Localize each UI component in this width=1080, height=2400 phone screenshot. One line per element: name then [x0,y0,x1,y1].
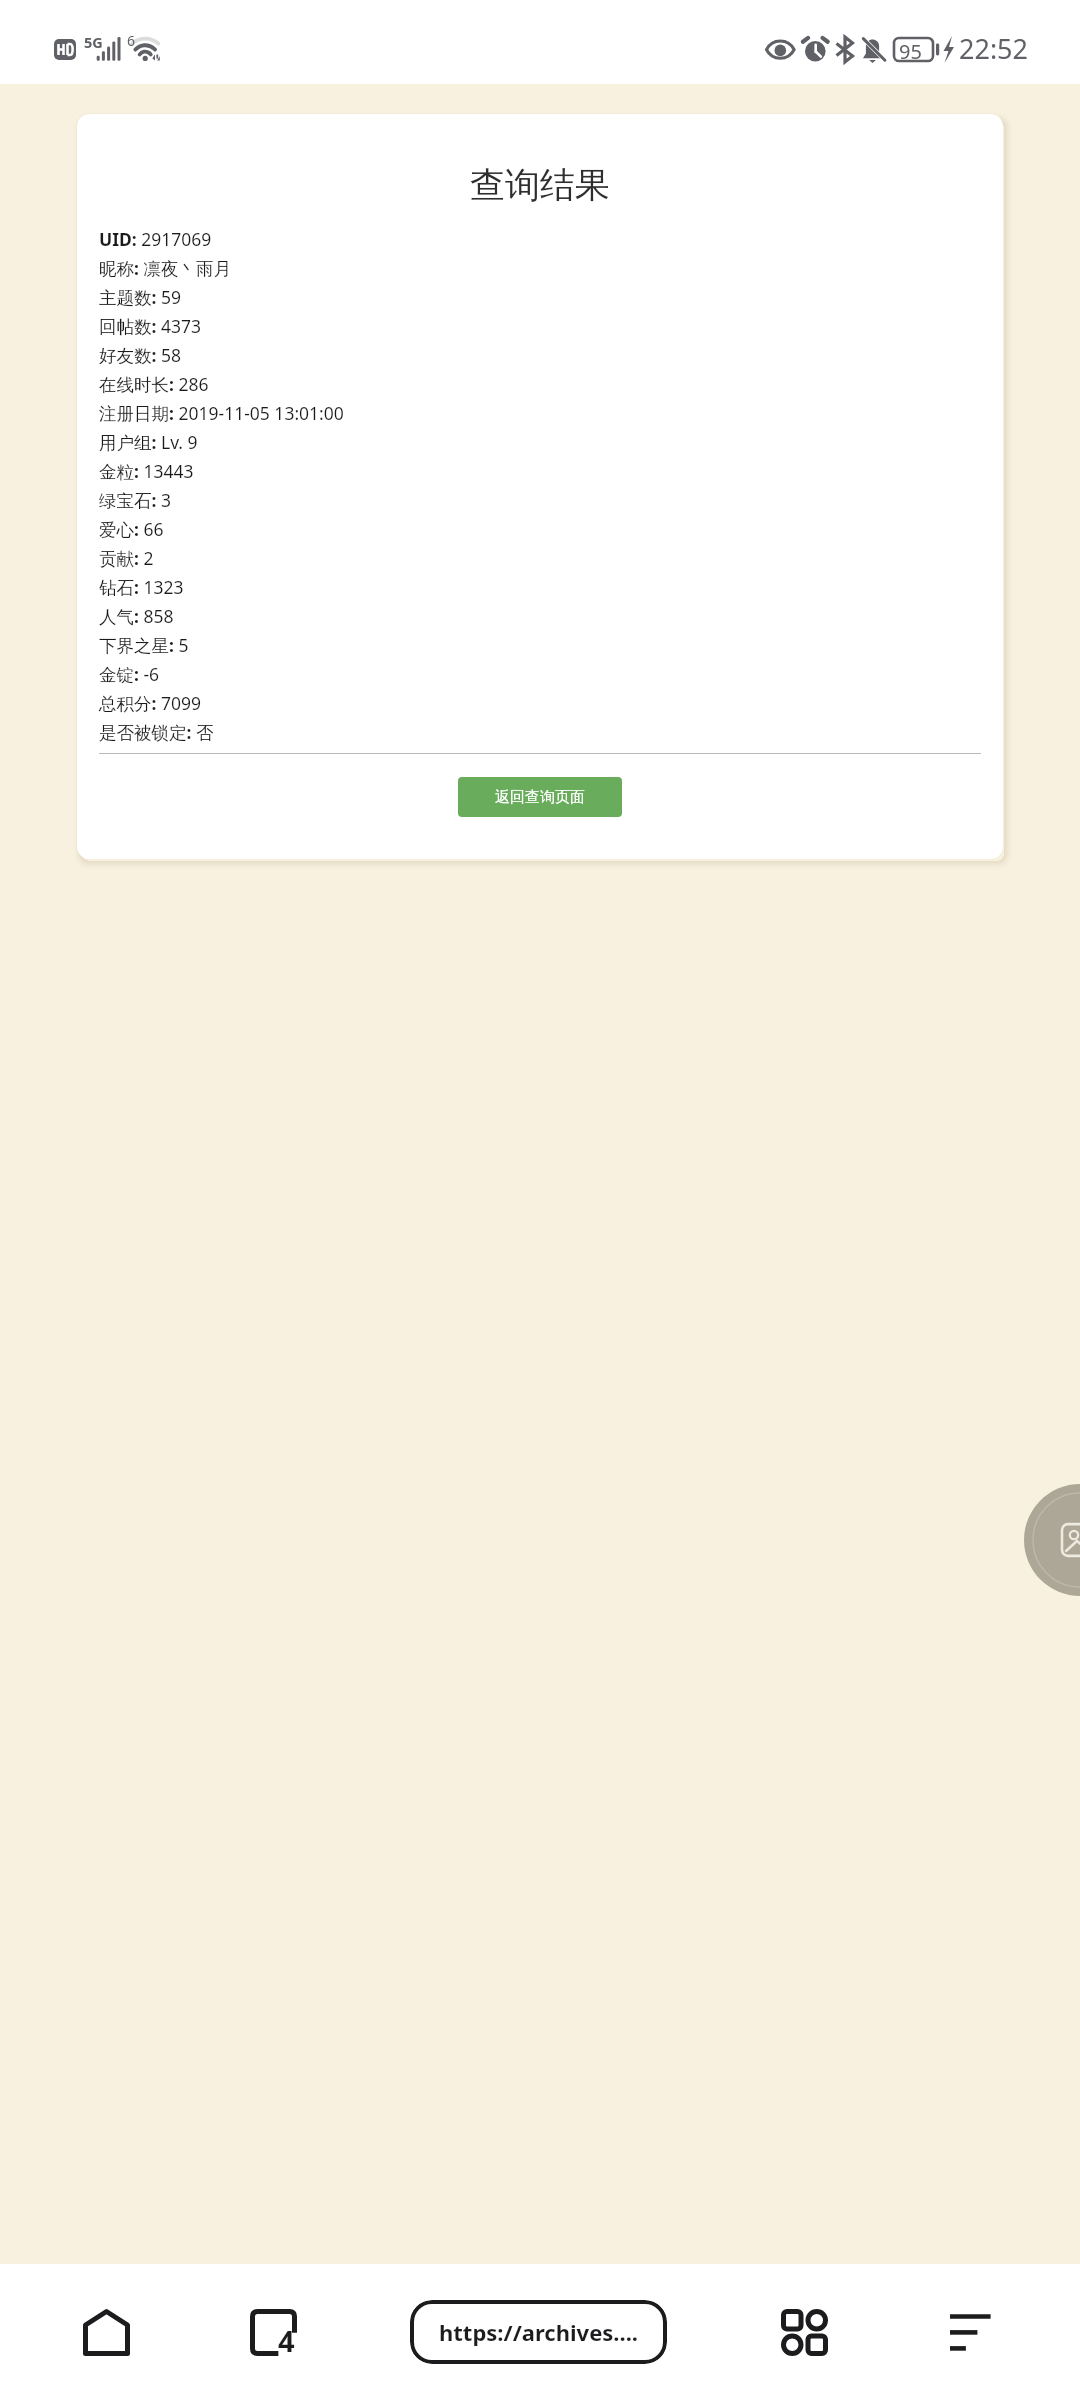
staticText: 下界之星: 5 [99,633,189,657]
button[interactable]: Address bar [410,2300,667,2364]
button[interactable]: 返回查询页面 [458,777,622,817]
staticText: 贡献: 2 [99,546,154,570]
staticText: 回帖数: 4373 [99,314,202,338]
staticText: 是否被锁定: 否 [99,720,214,744]
staticText: 金锭: -6 [99,662,160,686]
staticText: 查询结果 [77,163,1003,207]
staticText: 钻石: 1323 [99,575,184,599]
staticText: 爱心: 66 [99,517,164,541]
staticText: 好友数: 58 [99,343,181,367]
staticText: 金粒: 13443 [99,459,194,483]
staticText: 注册日期: 2019-11-05 13:01:00 [99,401,344,425]
staticText: 6 [127,31,136,50]
button[interactable]: Apps [760,2288,848,2376]
staticText: https://archives.... [439,2317,639,2347]
staticText: 总积分: 7099 [99,691,202,715]
staticText: 22:52 [959,30,1029,67]
staticText: 昵称: 凛夜丶雨月 [99,256,231,280]
button[interactable]: Home [62,2288,150,2376]
staticText: 95 [899,38,922,65]
staticText: 在线时长: 286 [99,372,209,396]
staticText: 主题数: 59 [99,285,181,309]
staticText: 4 [278,2321,295,2360]
staticText: 5G [84,32,103,52]
button[interactable]: Tabs [229,2288,317,2376]
button[interactable]: Image mode [1024,1484,1080,1596]
staticText: 人气: 858 [99,604,174,628]
staticText: UID: 2917069 [99,227,212,251]
staticText: 用户组: Lv. 9 [99,430,198,454]
button[interactable]: Menu [927,2288,1015,2376]
staticText: 绿宝石: 3 [99,488,171,512]
staticText: 返回查询页面 [495,788,585,807]
